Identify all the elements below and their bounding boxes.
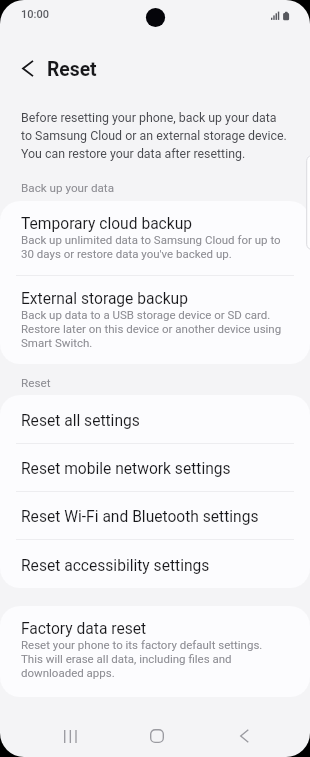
button[interactable]: Factory data reset <box>0 606 310 697</box>
button[interactable]: Navigate up <box>6 46 50 90</box>
staticText: Back up unlimited data to Samsung Cloud … <box>21 233 285 261</box>
button[interactable]: Reset mobile network settings <box>0 444 310 491</box>
staticText: 10:00 <box>21 8 49 21</box>
staticText: Reset all settings <box>21 411 140 430</box>
staticText: Reset your phone to its factory default … <box>21 638 285 680</box>
button[interactable]: Home <box>135 714 179 757</box>
button[interactable]: Back <box>222 714 266 757</box>
staticText: Before resetting your phone, back up you… <box>21 108 287 162</box>
staticText: Reset mobile network settings <box>21 459 231 478</box>
button[interactable]: Temporary cloud backup <box>0 201 310 275</box>
staticText: Reset <box>47 59 97 81</box>
button[interactable]: Reset accessibility settings <box>0 540 310 588</box>
staticText: Reset Wi-Fi and Bluetooth settings <box>21 507 259 526</box>
button[interactable]: Reset all settings <box>0 395 310 443</box>
button[interactable]: External storage backup <box>0 276 310 364</box>
staticText: Back up your data <box>21 182 115 195</box>
staticText: External storage backup <box>21 289 188 308</box>
staticText: Reset accessibility settings <box>21 556 210 575</box>
staticText: Temporary cloud backup <box>21 214 193 233</box>
staticText: Factory data reset <box>21 619 147 638</box>
staticText: Reset <box>21 377 51 390</box>
button[interactable]: Recent apps <box>48 714 92 757</box>
staticText: Back up data to a USB storage device or … <box>21 308 285 350</box>
button[interactable]: Reset Wi-Fi and Bluetooth settings <box>0 492 310 539</box>
